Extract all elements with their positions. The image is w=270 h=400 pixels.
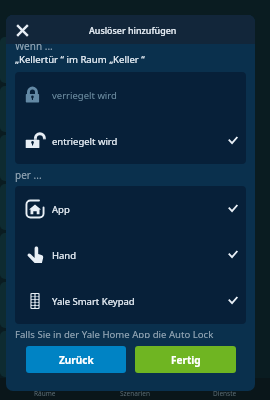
staticText: Zurück <box>59 353 94 367</box>
staticText: Fertig <box>171 353 201 367</box>
button[interactable]: Dienste <box>180 389 270 400</box>
staticText: Falls Sie in der Yale Home App die Auto … <box>15 328 214 338</box>
staticText: verriegelt wird <box>52 89 117 102</box>
button[interactable]: Schließen <box>11 19 33 41</box>
button[interactable]: App <box>15 186 246 232</box>
staticText: entriegelt wird <box>52 135 118 148</box>
staticText: App <box>52 203 70 216</box>
button[interactable]: Hand <box>15 232 246 278</box>
staticText: per ... <box>15 168 42 182</box>
staticText: Hand <box>52 249 77 262</box>
staticText: Räume <box>34 389 56 398</box>
staticText: Dienste <box>213 389 237 398</box>
button[interactable]: entriegelt wird <box>15 118 246 164</box>
staticText: Wenn ... <box>15 39 53 53</box>
staticText: Auslöser hinzufügen <box>89 24 177 36</box>
button[interactable]: Yale Smart Keypad <box>15 278 246 324</box>
button[interactable]: verriegelt wird <box>15 72 246 118</box>
staticText: „Kellertür “ im Raum „Keller “ <box>15 53 145 66</box>
button[interactable]: Fertig <box>135 346 236 373</box>
staticText: Yale Smart Keypad <box>52 295 135 308</box>
button[interactable]: Zurück <box>26 346 126 373</box>
staticText: Szenarien <box>120 389 150 398</box>
button[interactable]: Szenarien <box>90 389 180 400</box>
button[interactable]: Räume <box>0 389 90 400</box>
